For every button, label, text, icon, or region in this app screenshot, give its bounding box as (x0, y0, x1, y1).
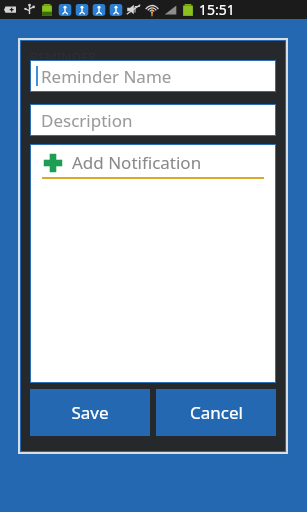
staticText: Add Notification (72, 151, 202, 174)
staticText: Save (71, 401, 109, 424)
button[interactable]: Description (30, 104, 276, 136)
button[interactable]: Reminder Name (30, 60, 276, 92)
staticText: Reminder Name (41, 65, 172, 88)
button[interactable]: Cancel (156, 389, 276, 436)
staticText: Description (41, 109, 133, 132)
staticText: Cancel (190, 401, 243, 424)
button[interactable]: Add Notification (30, 144, 276, 177)
staticText: 15:51 (199, 0, 235, 19)
button[interactable]: Save (30, 389, 150, 436)
